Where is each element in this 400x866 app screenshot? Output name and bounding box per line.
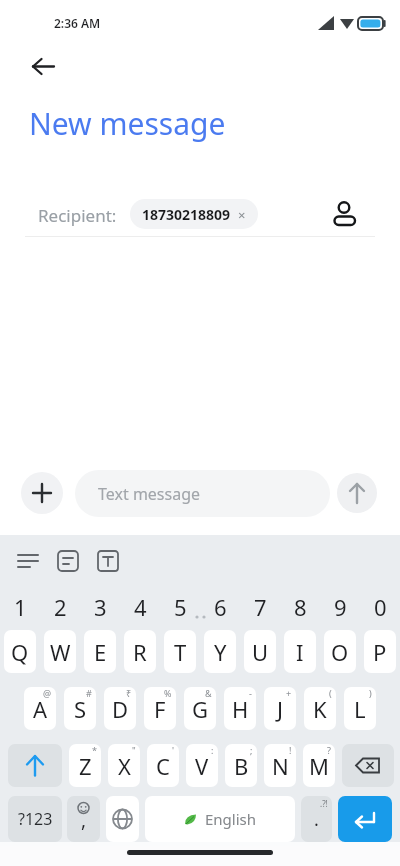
staticText: M: [309, 751, 329, 781]
staticText: F: [154, 694, 166, 724]
staticText: Q: [11, 637, 29, 667]
button[interactable]: M: [303, 744, 335, 787]
button[interactable]: R: [124, 630, 156, 673]
staticText: -: [249, 687, 252, 699]
button[interactable]: [50, 543, 86, 579]
button[interactable]: V: [186, 744, 218, 787]
button[interactable]: [8, 744, 62, 787]
button[interactable]: G: [184, 687, 216, 730]
button[interactable]: Q: [4, 630, 36, 673]
button[interactable]: [10, 543, 46, 579]
button[interactable]: B: [225, 744, 257, 787]
button[interactable]: English: [145, 796, 295, 842]
button[interactable]: J: [264, 687, 296, 730]
button[interactable]: L: [344, 687, 376, 730]
staticText: ;: [250, 744, 253, 756]
button[interactable]: T: [164, 630, 196, 673]
button[interactable]: ?123: [8, 796, 62, 842]
button[interactable]: W: [44, 630, 76, 673]
staticText: I: [296, 637, 304, 667]
button[interactable]: Z: [69, 744, 101, 787]
button[interactable]: A: [24, 687, 56, 730]
staticText: Y: [214, 637, 227, 667]
staticText: ,: [81, 807, 87, 833]
button[interactable]: [337, 473, 377, 513]
staticText: A: [33, 694, 48, 724]
button[interactable]: X: [108, 744, 140, 787]
staticText: !: [289, 744, 292, 756]
staticText: New message: [29, 103, 226, 144]
staticText: .: [314, 807, 319, 832]
staticText: K: [313, 694, 327, 724]
button[interactable]: F: [144, 687, 176, 730]
staticText: 7: [254, 592, 267, 622]
staticText: @: [43, 687, 52, 699]
staticText: B: [234, 751, 249, 781]
staticText: X: [118, 751, 131, 781]
staticText: 2: [54, 592, 67, 622]
button[interactable]: 2: [40, 585, 80, 628]
button[interactable]: 6: [200, 585, 240, 628]
staticText: V: [195, 751, 209, 781]
staticText: T: [174, 637, 187, 667]
staticText: 5: [174, 592, 187, 622]
button[interactable]: 3: [80, 585, 120, 628]
staticText: L: [354, 694, 366, 724]
staticText: 6: [214, 592, 227, 622]
button[interactable]: H: [224, 687, 256, 730]
button[interactable]: [338, 796, 392, 842]
button[interactable]: I: [284, 630, 316, 673]
button[interactable]: D: [104, 687, 136, 730]
button[interactable]: 1: [0, 585, 40, 628]
button[interactable]: [21, 472, 63, 514]
staticText: 8: [294, 592, 307, 622]
button[interactable]: [90, 543, 126, 579]
button[interactable]: 18730218809: [130, 199, 258, 229]
button[interactable]: Y: [204, 630, 236, 673]
staticText: 9: [334, 592, 347, 622]
staticText: (: [329, 687, 332, 699]
staticText: ?123: [18, 808, 53, 830]
button[interactable]: [342, 744, 394, 787]
staticText: &: [205, 687, 212, 699]
staticText: S: [74, 694, 87, 724]
staticText: U: [252, 637, 269, 667]
button[interactable]: 5: [160, 585, 200, 628]
staticText: 0: [374, 592, 387, 622]
staticText: English: [205, 809, 257, 829]
button[interactable]: N: [264, 744, 296, 787]
button[interactable]: 4: [120, 585, 160, 628]
button[interactable]: [20, 50, 64, 86]
button[interactable]: 9: [320, 585, 360, 628]
button[interactable]: U: [244, 630, 276, 673]
button[interactable]: 0: [360, 585, 400, 628]
button[interactable]: 7: [240, 585, 280, 628]
staticText: ': [172, 744, 175, 756]
button[interactable]: .?!: [301, 796, 332, 842]
staticText: Recipient:: [38, 204, 117, 227]
staticText: G: [192, 694, 209, 724]
button[interactable]: C: [147, 744, 179, 787]
button[interactable]: ,: [67, 796, 100, 842]
button[interactable]: 8: [280, 585, 320, 628]
staticText: D: [112, 694, 129, 724]
staticText: *: [92, 744, 97, 756]
button[interactable]: E: [84, 630, 116, 673]
staticText: Text message: [98, 483, 201, 505]
button[interactable]: P: [364, 630, 396, 673]
staticText: O: [331, 637, 349, 667]
button[interactable]: S: [64, 687, 96, 730]
button[interactable]: [326, 196, 362, 232]
button[interactable]: K: [304, 687, 336, 730]
staticText: E: [94, 637, 107, 667]
staticText: 1: [14, 592, 27, 622]
staticText: ): [369, 687, 372, 699]
button[interactable]: O: [324, 630, 356, 673]
staticText: 18730218809: [142, 205, 231, 224]
staticText: 2:36 AM: [54, 15, 101, 31]
button[interactable]: Text message: [75, 470, 330, 517]
staticText: :: [211, 744, 214, 756]
button[interactable]: [106, 796, 139, 842]
staticText: R: [133, 637, 147, 667]
staticText: N: [272, 751, 289, 781]
